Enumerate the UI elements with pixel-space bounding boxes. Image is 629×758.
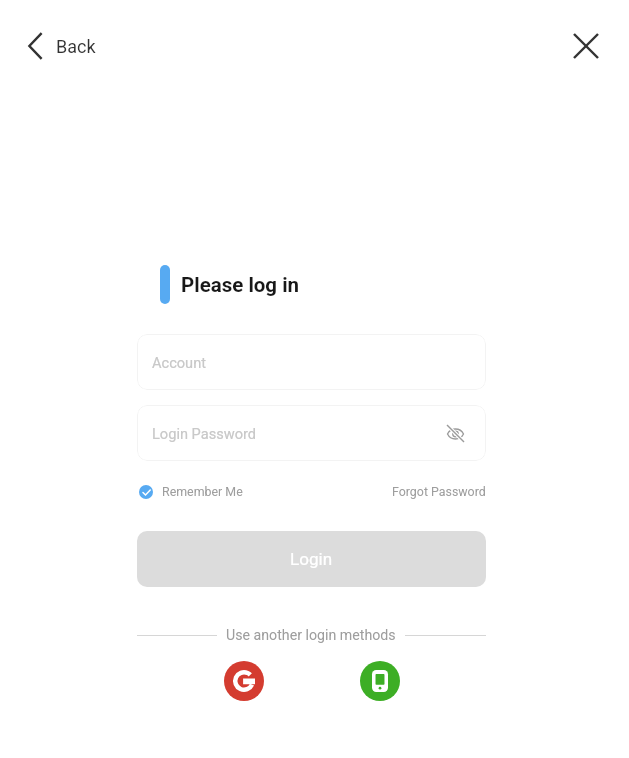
button[interactable]: Sign in with Google — [224, 661, 264, 701]
staticText: Login Password — [152, 425, 257, 442]
staticText: Use another login methods — [226, 627, 396, 644]
button[interactable]: Sign in with phone — [360, 661, 400, 701]
button[interactable]: Show password — [440, 418, 470, 448]
staticText: Login — [290, 549, 333, 569]
staticText: Forgot Password — [392, 484, 486, 499]
button[interactable]: Forgot Password — [392, 484, 486, 499]
button[interactable]: Back — [22, 24, 101, 68]
staticText: Please log in — [181, 273, 300, 297]
button[interactable]: Login Password — [137, 405, 486, 461]
staticText: Account — [152, 354, 206, 371]
button[interactable]: Remember Me — [137, 484, 243, 499]
button[interactable]: Account — [137, 334, 486, 390]
button[interactable]: Login — [137, 531, 486, 587]
button[interactable]: Close — [567, 27, 605, 65]
staticText: Back — [56, 36, 96, 57]
staticText: Remember Me — [162, 484, 243, 499]
